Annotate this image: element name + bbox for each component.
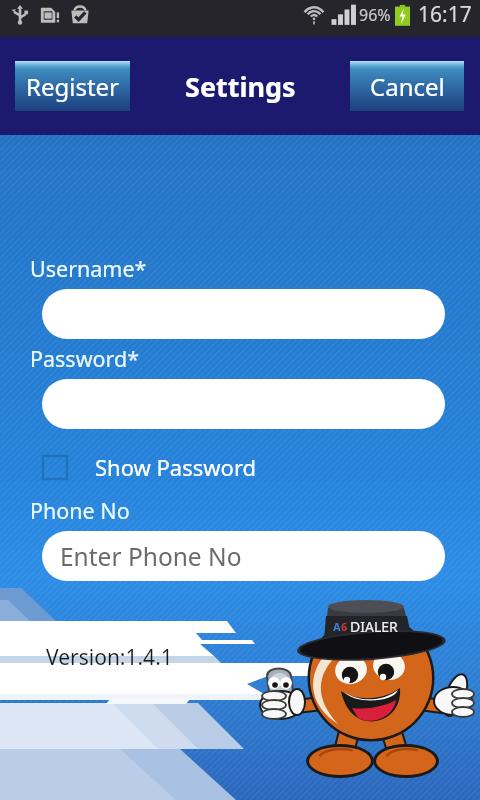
staticText: A [333,619,341,634]
staticText: Version:1.4.1 [46,643,173,672]
staticText: Cancel [370,70,445,103]
staticText: Password* [30,344,140,373]
button[interactable]: Enter Phone No [42,531,445,581]
staticText: DIALER [350,617,398,636]
staticText: 16:17 [418,0,472,29]
staticText: 96% [359,4,391,26]
button[interactable]: Register [15,61,130,111]
button[interactable]: Cancel [350,61,464,111]
staticText: Settings [185,68,296,105]
button[interactable] [42,379,445,429]
staticText: Show Password [95,452,257,482]
staticText: Phone No [30,496,130,525]
staticText: Register [26,70,120,103]
staticText: Username* [30,254,147,283]
staticText: Enter Phone No [60,540,242,573]
staticText: 6 [341,619,348,634]
button[interactable] [42,289,445,339]
button[interactable]: Show Password [43,452,257,482]
